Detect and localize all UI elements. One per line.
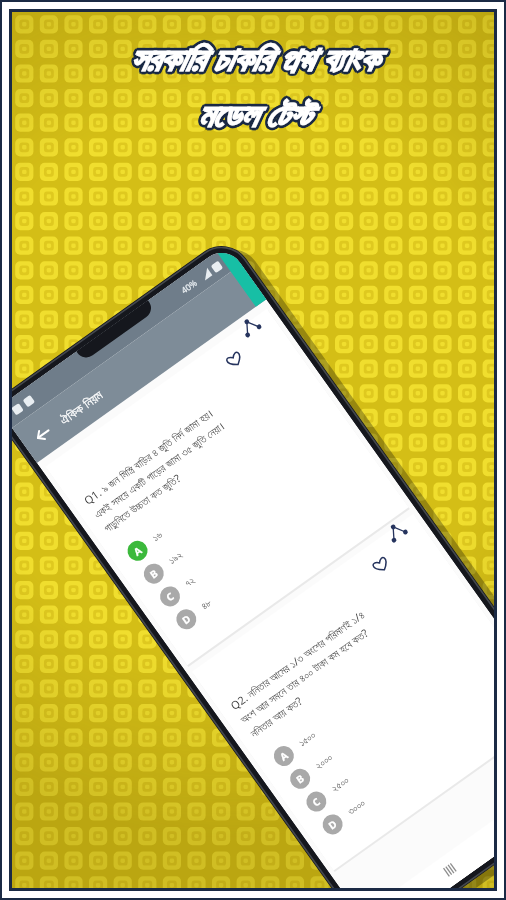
button[interactable]: Sarkari Chakri Prashna Bank Model Test <box>0 0 506 900</box>
